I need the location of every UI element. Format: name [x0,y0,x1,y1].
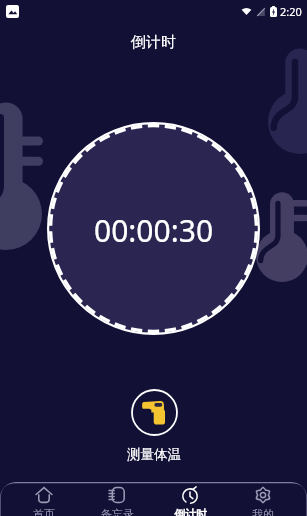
staticText: 备忘录 [101,507,134,516]
button[interactable]: 倒计时 [161,482,219,516]
staticText: 2:20 [280,4,302,19]
staticText: 我的 [252,507,274,516]
button[interactable]: 首页 [15,482,73,516]
button[interactable]: 备忘录 [88,482,146,516]
staticText: 测量体温 [127,446,181,463]
staticText: 00:00:30 [94,210,214,251]
button[interactable]: 测量体温 [127,389,181,463]
staticText: 倒计时 [174,507,207,516]
staticText: 首页 [33,507,55,516]
button[interactable]: 我的 [234,482,292,516]
staticText: 倒计时 [131,33,176,52]
